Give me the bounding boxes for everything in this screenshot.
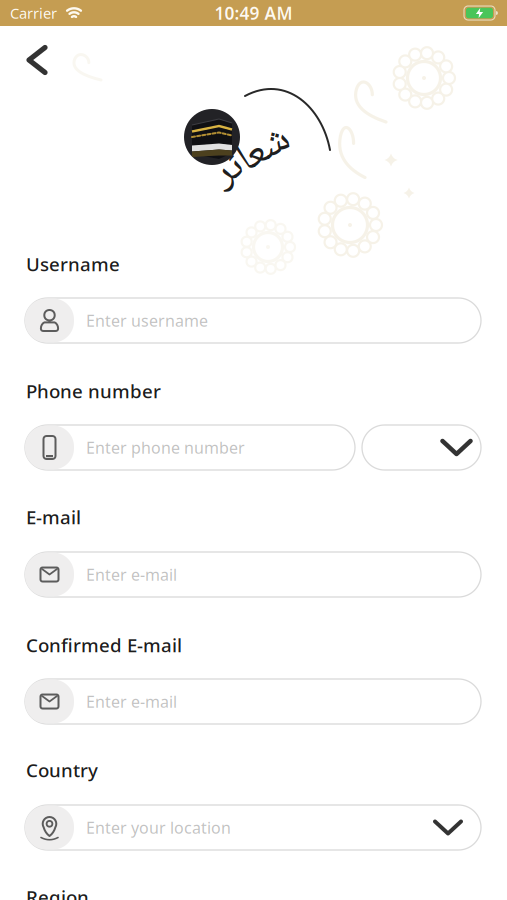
staticText: Carrier (10, 3, 57, 23)
staticText: شعائر (211, 123, 293, 193)
staticText: Phone number (26, 379, 161, 403)
staticText: Enter phone number (86, 437, 245, 458)
button[interactable]: Enter username (25, 298, 481, 343)
staticText: Country (26, 758, 98, 782)
button[interactable]: Select country code (362, 425, 481, 470)
button[interactable]: Back (19, 37, 55, 82)
staticText: Enter your location (86, 817, 231, 838)
button[interactable]: Enter e-mail (25, 552, 481, 597)
staticText: 10:49 AM (214, 1, 292, 24)
button[interactable]: Enter e-mail (25, 679, 481, 724)
staticText: Username (26, 252, 120, 276)
staticText: Enter e-mail (86, 564, 177, 585)
staticText: Enter e-mail (86, 691, 177, 712)
staticText: Confirmed E-mail (26, 633, 182, 657)
button[interactable]: Enter your location (25, 805, 481, 850)
button[interactable]: Enter phone number (25, 425, 355, 470)
staticText: Region (26, 885, 89, 900)
staticText: E-mail (26, 505, 81, 529)
staticText: Enter username (86, 310, 208, 331)
